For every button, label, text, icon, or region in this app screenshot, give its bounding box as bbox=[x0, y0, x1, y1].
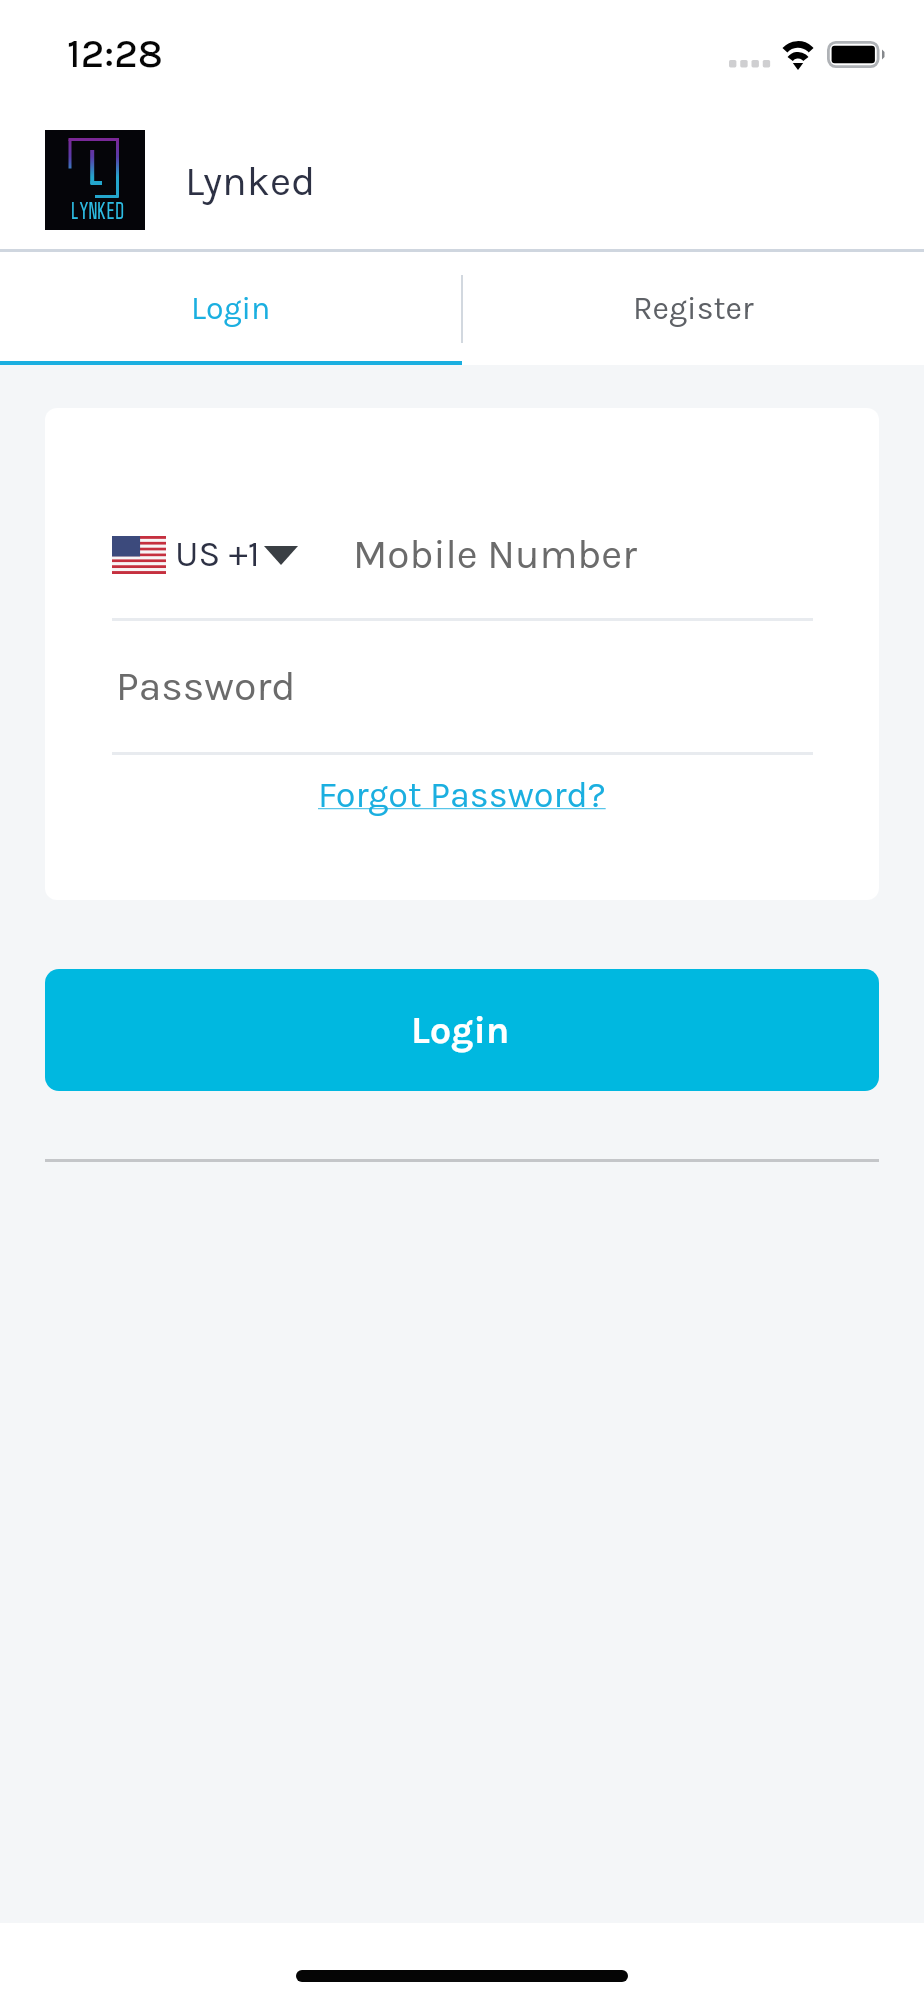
staticText: LYNKED bbox=[70, 198, 124, 225]
staticText: US +1 bbox=[175, 533, 260, 575]
button[interactable]: Forgot Password? bbox=[310, 768, 614, 822]
button[interactable]: Login bbox=[0, 252, 462, 365]
staticText: Login bbox=[191, 290, 271, 327]
staticText: Mobile Number bbox=[353, 531, 637, 578]
button[interactable]: Select country code bbox=[100, 526, 298, 584]
staticText: Register bbox=[633, 290, 754, 327]
staticText: Password bbox=[116, 662, 296, 710]
button[interactable]: Register bbox=[462, 252, 924, 365]
button[interactable]: Login bbox=[45, 969, 879, 1091]
staticText: 12:28 bbox=[67, 30, 163, 77]
button[interactable]: Lynked logo bbox=[45, 130, 145, 230]
staticText: Login bbox=[411, 1008, 510, 1052]
staticText: Lynked bbox=[185, 157, 316, 205]
